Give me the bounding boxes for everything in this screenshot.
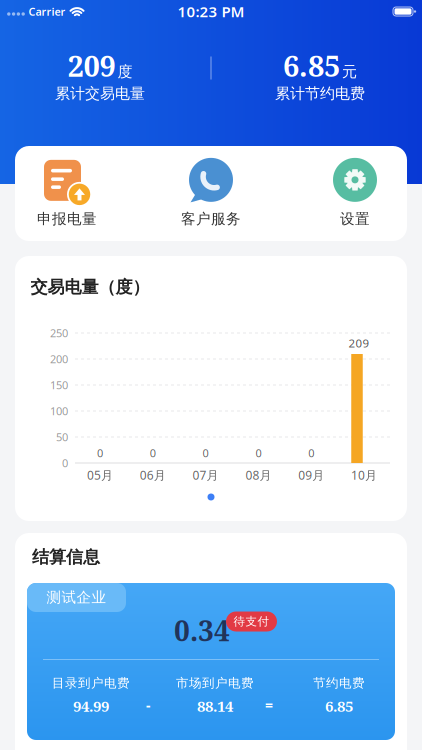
staticText: 市场到户电费: [176, 675, 254, 691]
staticText: -: [146, 695, 150, 715]
staticText: 6.85: [283, 46, 340, 85]
staticText: 150: [50, 377, 68, 392]
staticText: 测试企业: [46, 588, 106, 607]
staticText: 交易电量（度）: [30, 276, 149, 298]
staticText: 申报电量: [37, 210, 97, 228]
staticText: 0: [203, 445, 209, 460]
staticText: 累计节约电费: [275, 84, 365, 103]
staticText: 待支付: [233, 614, 269, 629]
button[interactable]: 客户服务: [163, 157, 259, 228]
staticText: 09月: [298, 467, 324, 483]
staticText: 250: [50, 325, 68, 340]
staticText: 94.99: [73, 696, 109, 716]
staticText: 100: [50, 403, 68, 418]
staticText: 0: [255, 445, 261, 460]
button[interactable]: 申报电量: [19, 157, 115, 228]
staticText: 0.34: [174, 611, 230, 649]
staticText: 50: [56, 429, 68, 444]
staticText: 10:23 PM: [177, 1, 244, 22]
staticText: Carrier: [28, 4, 65, 19]
staticText: 07月: [193, 467, 219, 483]
staticText: =: [265, 695, 273, 715]
staticText: 209: [67, 46, 115, 85]
staticText: 06月: [140, 467, 166, 483]
staticText: 200: [50, 351, 68, 366]
staticText: 结算信息: [32, 546, 100, 568]
staticText: 元: [342, 62, 357, 81]
staticText: 0: [308, 445, 314, 460]
staticText: 0: [150, 445, 156, 460]
staticText: 05月: [87, 467, 113, 483]
staticText: 88.14: [197, 696, 233, 716]
staticText: 10月: [351, 467, 377, 483]
staticText: 209: [348, 335, 369, 351]
staticText: 0: [62, 455, 68, 470]
staticText: 累计交易电量: [55, 84, 145, 103]
staticText: 6.85: [325, 696, 353, 716]
staticText: 08月: [245, 467, 271, 483]
staticText: 目录到户电费: [52, 675, 130, 691]
staticText: 度: [117, 62, 132, 81]
button[interactable]: 设置: [307, 157, 403, 228]
button[interactable]: 测试企业: [27, 583, 395, 740]
staticText: 节约电费: [313, 675, 365, 691]
staticText: 0: [97, 445, 103, 460]
staticText: 客户服务: [181, 210, 241, 228]
staticText: 设置: [340, 210, 370, 228]
